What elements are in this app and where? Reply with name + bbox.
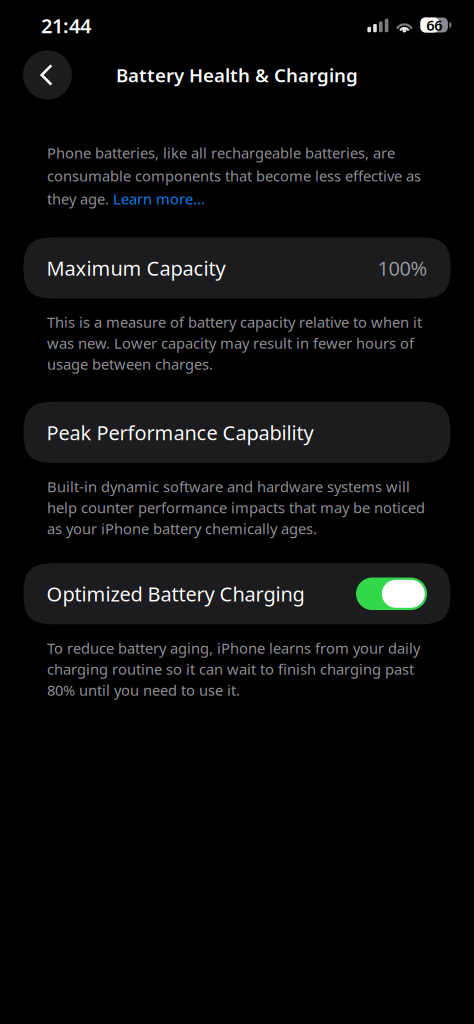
- staticText: To reduce battery aging, iPhone learns f…: [47, 638, 420, 700]
- staticText: consumable components that become less e…: [47, 166, 421, 185]
- staticText: Built-in dynamic software and hardware s…: [47, 477, 425, 538]
- staticText: Maximum Capacity: [46, 255, 225, 281]
- staticText: Optimized Battery Charging: [46, 580, 304, 607]
- staticText: Phone batteries, like all rechargeable b…: [47, 143, 395, 162]
- staticText: Battery Health & Charging: [116, 63, 358, 87]
- staticText: Peak Performance Capability: [46, 419, 313, 446]
- staticText: they age.: [47, 189, 113, 208]
- button[interactable]: Maximum Capacity: [23, 237, 450, 298]
- button[interactable]: Back: [23, 50, 72, 99]
- button[interactable]: Peak Performance Capability: [23, 402, 450, 463]
- button[interactable]: Optimized Battery Charging: [23, 563, 450, 624]
- staticText: 21:44: [41, 12, 91, 39]
- staticText: 66: [426, 15, 442, 35]
- staticText: 100%: [377, 255, 427, 281]
- staticText: Learn more...: [113, 189, 205, 208]
- button[interactable]: Learn more...: [113, 189, 205, 208]
- staticText: This is a measure of battery capacity re…: [47, 312, 422, 374]
